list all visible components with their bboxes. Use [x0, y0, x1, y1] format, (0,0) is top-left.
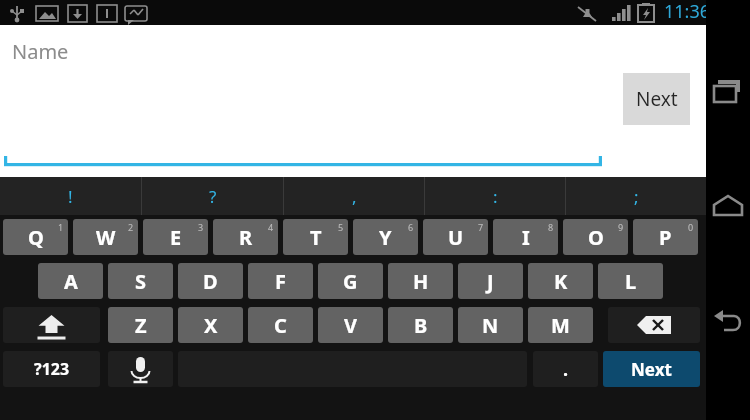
button[interactable]: : [425, 177, 565, 215]
staticText: P [659, 224, 672, 251]
button[interactable]: B [388, 307, 453, 343]
staticText: X [204, 312, 218, 339]
button[interactable]: ? [142, 177, 283, 215]
button[interactable]: Y [353, 219, 418, 255]
staticText: ! [68, 185, 73, 208]
staticText: 8 [548, 221, 554, 233]
button[interactable]: V [318, 307, 383, 343]
button[interactable]: E [143, 219, 208, 255]
button[interactable]: Next [603, 351, 700, 387]
button[interactable]: T [283, 219, 348, 255]
button[interactable]: J [458, 263, 523, 299]
button[interactable]: ! [0, 177, 141, 215]
staticText: O [588, 224, 604, 251]
staticText: . [563, 357, 569, 382]
staticText: I [522, 224, 530, 251]
staticText: W [96, 224, 116, 251]
button[interactable]: Shift [3, 307, 100, 343]
staticText: K [554, 268, 568, 295]
button[interactable]: Voice input [108, 351, 173, 387]
button[interactable]: N [458, 307, 523, 343]
button[interactable]: D [178, 263, 243, 299]
staticText: H [413, 268, 429, 295]
staticText: T [310, 224, 322, 251]
staticText: R [239, 224, 253, 251]
staticText: C [274, 312, 287, 339]
button[interactable]: , [284, 177, 424, 215]
staticText: U [448, 224, 464, 251]
staticText: 9 [618, 221, 624, 233]
staticText: Next [631, 358, 672, 381]
staticText: E [170, 224, 182, 251]
button[interactable]: Back [706, 302, 750, 346]
staticText: , [352, 185, 357, 208]
staticText: G [343, 268, 358, 295]
button[interactable]: . [533, 351, 598, 387]
button[interactable]: Q [3, 219, 68, 255]
staticText: J [487, 268, 494, 295]
button[interactable]: U [423, 219, 488, 255]
staticText: B [414, 312, 428, 339]
button[interactable]: L [598, 263, 663, 299]
staticText: F [275, 268, 286, 295]
staticText: Q [28, 224, 44, 251]
button[interactable]: Recents [706, 72, 750, 116]
button[interactable]: M [528, 307, 593, 343]
button[interactable]: ; [566, 177, 706, 215]
button[interactable]: P [633, 219, 698, 255]
button[interactable]: Z [108, 307, 173, 343]
staticText: 3 [198, 221, 204, 233]
staticText: 5 [338, 221, 344, 233]
staticText: ; [634, 185, 639, 208]
staticText: 6 [408, 221, 414, 233]
button[interactable]: Next [623, 73, 690, 125]
staticText: L [625, 268, 637, 295]
button[interactable]: X [178, 307, 243, 343]
staticText: V [344, 312, 357, 339]
staticText: 1 [58, 221, 64, 233]
staticText: 11:36 [664, 0, 711, 24]
staticText: Next [636, 86, 678, 112]
staticText: ? [209, 185, 217, 208]
staticText: A [64, 268, 78, 295]
staticText: D [203, 268, 218, 295]
staticText: S [135, 268, 147, 295]
staticText: ?123 [34, 358, 70, 380]
button[interactable]: R [213, 219, 278, 255]
staticText: Z [135, 312, 147, 339]
button[interactable]: A [38, 263, 103, 299]
staticText: Name [12, 38, 69, 65]
button[interactable]: G [318, 263, 383, 299]
staticText: Y [379, 224, 392, 251]
button[interactable]: ?123 [3, 351, 100, 387]
button[interactable]: Delete [608, 307, 700, 343]
staticText: 0 [688, 221, 694, 233]
button[interactable]: Home [706, 187, 750, 231]
button[interactable]: O [563, 219, 628, 255]
button[interactable]: C [248, 307, 313, 343]
staticText: 7 [478, 221, 484, 233]
button[interactable]: S [108, 263, 173, 299]
staticText: 2 [128, 221, 134, 233]
staticText: N [482, 312, 499, 339]
button[interactable]: F [248, 263, 313, 299]
button[interactable]: K [528, 263, 593, 299]
button[interactable]: I [493, 219, 558, 255]
staticText: : [493, 185, 498, 208]
button[interactable]: W [73, 219, 138, 255]
staticText: M [551, 312, 570, 339]
button[interactable]: H [388, 263, 453, 299]
staticText: 4 [268, 221, 274, 233]
